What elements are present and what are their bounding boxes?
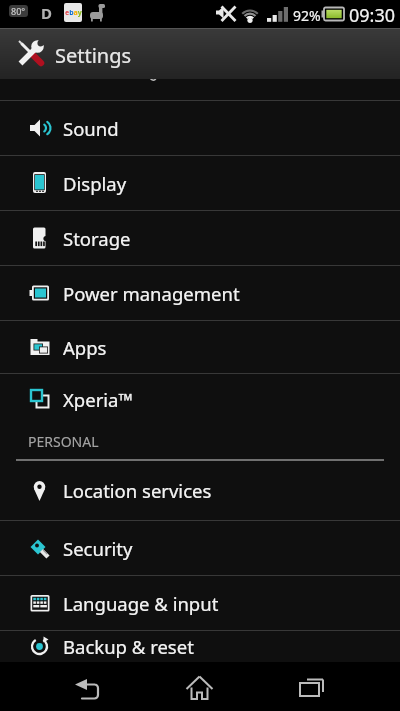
button[interactable] bbox=[287, 666, 337, 706]
button[interactable]: Sound bbox=[0, 101, 400, 155]
staticText: Language & input bbox=[63, 591, 219, 616]
staticText: Power management bbox=[63, 281, 240, 306]
button[interactable]: Display bbox=[0, 156, 400, 210]
button[interactable] bbox=[62, 666, 112, 706]
staticText: Security bbox=[63, 536, 133, 561]
button[interactable]: Power management bbox=[0, 266, 400, 320]
button[interactable] bbox=[175, 666, 225, 706]
button[interactable]: Location services bbox=[0, 461, 400, 520]
staticText: 80° bbox=[11, 5, 26, 17]
button[interactable]: Storage bbox=[0, 211, 400, 265]
staticText: ebay bbox=[65, 8, 82, 18]
staticText: Backup & reset bbox=[63, 634, 194, 659]
button[interactable]: Backup & reset bbox=[0, 631, 400, 662]
staticText: Location services bbox=[63, 478, 212, 503]
staticText: Apps bbox=[63, 335, 107, 360]
staticText: D bbox=[41, 3, 52, 23]
staticText: PERSONAL bbox=[28, 432, 99, 451]
staticText: 09:30 bbox=[349, 3, 396, 28]
staticText: Settings bbox=[55, 42, 132, 69]
staticText: Xperia™ bbox=[63, 387, 133, 412]
staticText: 92% bbox=[293, 6, 321, 25]
button[interactable]: Apps bbox=[0, 321, 400, 373]
button[interactable]: Language & input bbox=[0, 576, 400, 630]
button[interactable]: Xperia™ bbox=[0, 374, 400, 424]
staticText: Sound bbox=[63, 116, 119, 141]
staticText: Display bbox=[63, 171, 127, 196]
staticText: Storage bbox=[63, 226, 131, 251]
button[interactable]: Security bbox=[0, 521, 400, 575]
